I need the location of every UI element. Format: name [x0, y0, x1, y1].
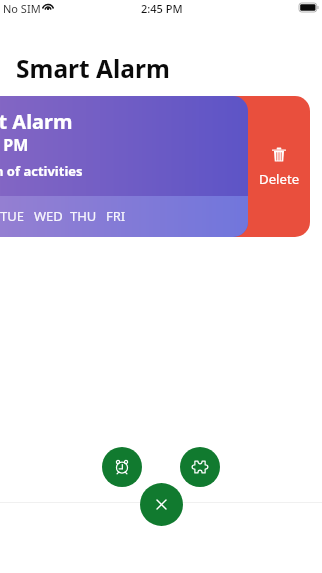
staticText: WED — [34, 207, 63, 225]
staticText: No SIM — [3, 1, 41, 16]
staticText: Delete — [259, 170, 300, 188]
staticText: THU — [70, 207, 97, 225]
staticText: Smart Alarm — [0, 108, 73, 135]
staticText: 10:30 PM — [0, 134, 29, 156]
staticText: 2:45 PM — [141, 1, 183, 16]
button[interactable]: Set alarm — [102, 447, 142, 487]
staticText: Smart Alarm — [16, 52, 170, 85]
staticText: Detection of activities — [0, 162, 83, 180]
staticText: FRI — [106, 207, 126, 225]
button[interactable]: Smart Alarm 10:30 PM — [0, 96, 248, 237]
button[interactable]: Close menu — [140, 483, 183, 526]
button[interactable]: Add activity detection — [180, 447, 220, 487]
button[interactable]: Delete alarm — [200, 96, 310, 237]
staticText: TUE — [0, 207, 24, 225]
